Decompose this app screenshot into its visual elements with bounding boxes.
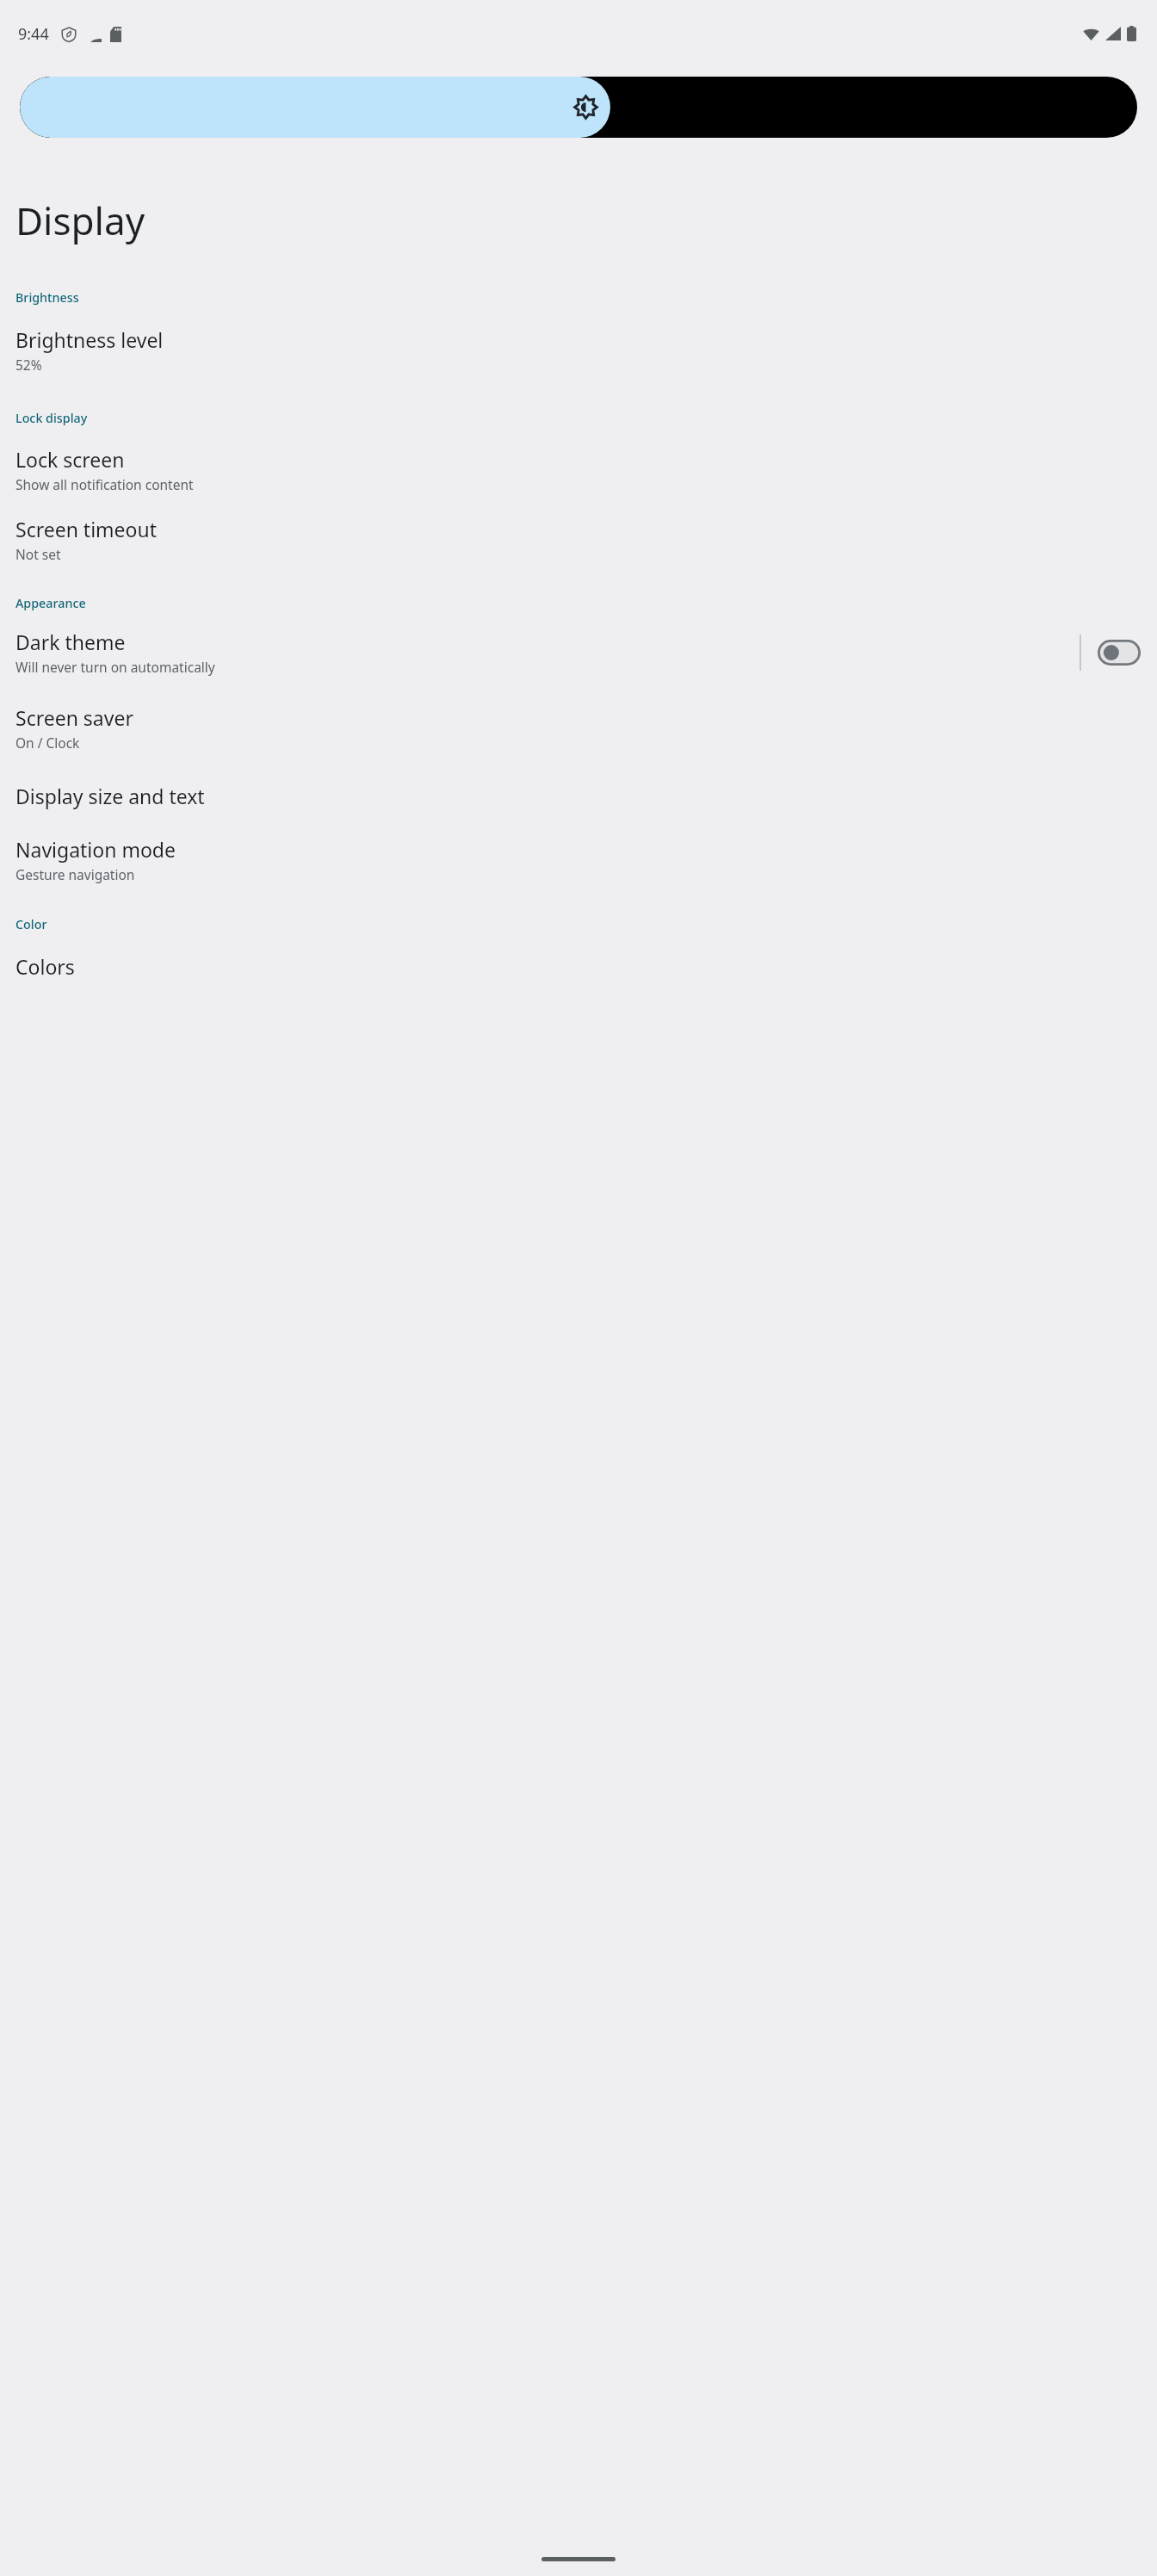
- staticText: Dark theme: [15, 629, 126, 655]
- button[interactable]: Lock screen: [0, 446, 1157, 493]
- button[interactable]: Display size and text: [0, 783, 1157, 809]
- staticText: Color: [15, 916, 47, 932]
- staticText: Gesture navigation: [15, 865, 135, 883]
- staticText: Navigation mode: [15, 836, 176, 863]
- staticText: Brightness level: [15, 326, 164, 353]
- button[interactable]: Brightness level slider: [20, 77, 1137, 138]
- staticText: Will never turn on automatically: [15, 658, 215, 676]
- button[interactable]: Brightness level: [0, 326, 1157, 374]
- staticText: Colors: [15, 953, 75, 980]
- staticText: 52%: [15, 356, 42, 374]
- staticText: On / Clock: [15, 734, 80, 752]
- staticText: Lock screen: [15, 446, 125, 473]
- staticText: Screen timeout: [15, 516, 157, 542]
- button[interactable]: Dark theme toggle: [1081, 631, 1157, 674]
- staticText: G: [85, 26, 102, 42]
- button[interactable]: Navigation mode: [0, 836, 1157, 883]
- staticText: Lock display: [15, 410, 88, 426]
- staticText: Not set: [15, 545, 61, 563]
- staticText: Display: [15, 195, 145, 246]
- staticText: Show all notification content: [15, 475, 194, 493]
- staticText: Appearance: [15, 595, 86, 611]
- staticText: Display size and text: [15, 783, 205, 809]
- button[interactable]: Dark theme: [0, 629, 1080, 676]
- button[interactable]: Screen timeout: [0, 516, 1157, 563]
- staticText: Screen saver: [15, 704, 133, 731]
- staticText: 9:44: [18, 23, 49, 45]
- button[interactable]: Screen saver: [0, 704, 1157, 752]
- other: Dark theme toggle: [1098, 640, 1141, 666]
- button[interactable]: Colors: [0, 953, 1157, 980]
- staticText: Brightness: [15, 289, 79, 306]
